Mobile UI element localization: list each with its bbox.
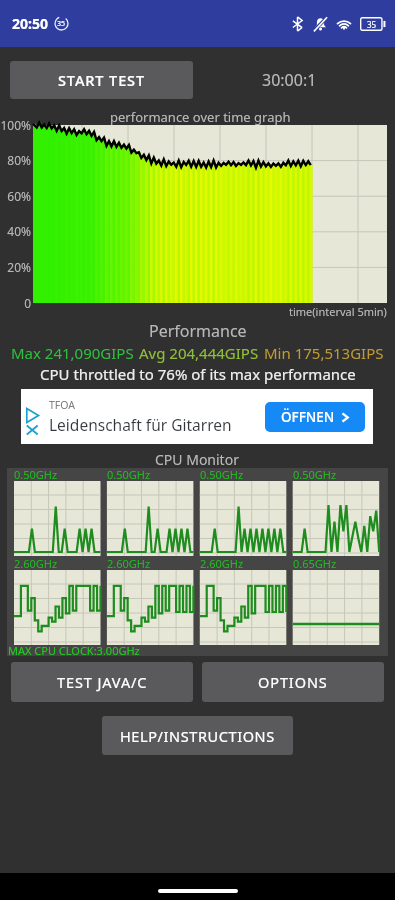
staticText: 30:00:1 [262,69,317,91]
staticText: 20% [0,259,31,275]
staticText: OPTIONS [258,672,328,692]
staticText: 0.65GHz [293,556,337,571]
other: Ad choices [26,407,39,435]
staticText: 2.60GHz [14,556,58,571]
staticText: CPU throttled to 76% of its max performa… [40,364,356,384]
staticText: 0.50GHz [293,467,337,482]
button[interactable]: HELP/INSTRUCTIONS [102,716,293,755]
staticText: time(interval 5min) [289,304,387,319]
staticText: 20:50 [12,14,48,33]
staticText: 2.60GHz [107,556,151,571]
staticText: 60% [0,188,31,204]
staticText: 35 [57,19,66,29]
staticText: 35 [367,19,377,30]
staticText: 2.60GHz [200,556,244,571]
staticText: HELP/INSTRUCTIONS [120,726,275,746]
staticText: performance over time graph [110,108,291,126]
staticText: 80% [0,152,31,168]
staticText: TFOA [49,398,75,412]
staticText: 0.50GHz [200,467,244,482]
button[interactable]: Ad choices [21,389,373,444]
staticText: Leidenschaft für Gitarren [49,414,232,435]
staticText: MAX CPU CLOCK:3.00GHz [8,643,140,658]
staticText: 100% [0,117,31,133]
staticText: Avg 204,444GIPS [139,343,259,363]
button[interactable]: OPTIONS [202,662,384,702]
staticText: Max 241,090GIPS [11,343,134,363]
staticText: 40% [0,223,31,239]
staticText: 0.50GHz [107,467,151,482]
button[interactable]: ÖFFNEN [265,402,365,432]
staticText: Performance [149,320,247,342]
staticText: 0.50GHz [14,467,58,482]
button[interactable]: START TEST [10,61,193,99]
staticText: 0 [0,295,31,311]
staticText: START TEST [58,70,146,90]
staticText: ÖFFNEN [281,408,335,426]
staticText: TEST JAVA/C [57,672,148,692]
staticText: CPU Monitor [155,450,239,469]
button[interactable]: TEST JAVA/C [11,662,193,702]
staticText: Min 175,513GIPS [264,343,384,363]
